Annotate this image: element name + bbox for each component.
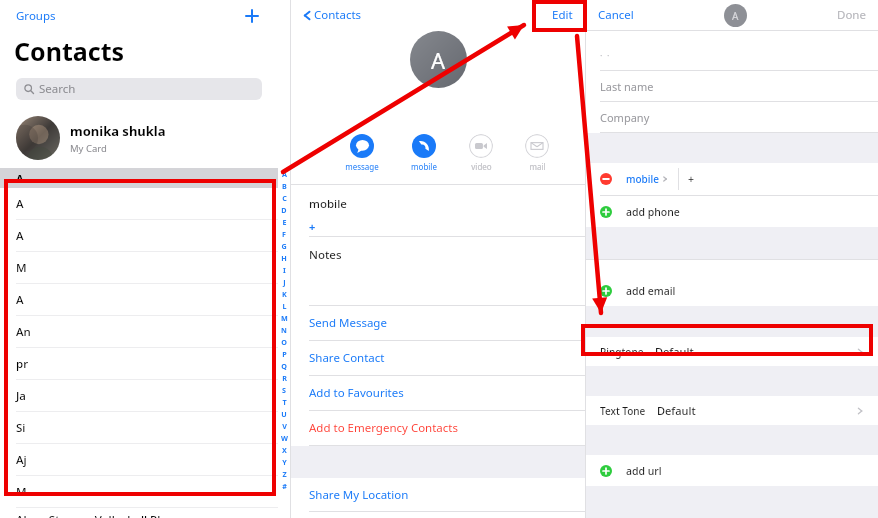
staticText: H: [281, 253, 287, 263]
button[interactable]: Y: [278, 456, 290, 468]
button[interactable]: mobile: [586, 163, 878, 195]
button[interactable]: Send Message: [291, 306, 585, 340]
staticText: Default: [655, 344, 694, 359]
staticText: My Card: [70, 142, 107, 155]
button[interactable]: X: [278, 444, 290, 456]
staticText: Contacts: [314, 7, 362, 23]
button[interactable]: Company: [586, 102, 878, 133]
button[interactable]: Done: [835, 3, 868, 27]
staticText: A: [431, 45, 446, 75]
staticText: R: [282, 373, 287, 383]
staticText: Edit: [552, 7, 573, 23]
button[interactable]: Add to Emergency Contacts: [291, 411, 585, 445]
button[interactable]: O: [278, 336, 290, 348]
staticText: G: [281, 241, 287, 251]
button[interactable]: K: [278, 288, 290, 300]
button[interactable]: G: [278, 240, 290, 252]
staticText: Aj: [16, 452, 27, 468]
staticText: Z: [282, 469, 287, 479]
button[interactable]: Z: [278, 468, 290, 480]
button[interactable]: Share Contact: [291, 341, 585, 375]
button[interactable]: W: [278, 432, 290, 444]
button[interactable]: Add to Favourites: [291, 376, 585, 410]
button[interactable]: V: [278, 420, 290, 432]
button[interactable]: H: [278, 252, 290, 264]
button[interactable]: Cancel: [596, 3, 636, 27]
button[interactable]: An: [0, 316, 278, 348]
button[interactable]: N: [278, 324, 290, 336]
button[interactable]: F: [278, 228, 290, 240]
button[interactable]: A: [0, 220, 278, 252]
button[interactable]: Aj: [0, 444, 278, 476]
staticText: A: [16, 196, 24, 212]
staticText: Si: [16, 420, 26, 436]
staticText: Notes: [309, 247, 342, 263]
button[interactable]: D: [278, 204, 290, 216]
button[interactable]: mobile: [409, 132, 439, 174]
button[interactable]: video: [467, 132, 495, 174]
staticText: Ringtone: [600, 345, 644, 359]
staticText: M: [281, 313, 288, 323]
button[interactable]: Contacts: [299, 3, 366, 27]
button[interactable]: P: [278, 348, 290, 360]
staticText: Done: [837, 7, 866, 23]
staticText: O: [281, 337, 287, 347]
button[interactable]: Groups: [14, 5, 58, 27]
staticText: V: [282, 421, 287, 431]
button[interactable]: J: [278, 276, 290, 288]
button[interactable]: S: [278, 384, 290, 396]
button[interactable]: A: [0, 188, 278, 220]
button[interactable]: R: [278, 372, 290, 384]
button[interactable]: I: [278, 264, 290, 276]
button[interactable]: Ja: [0, 380, 278, 412]
button[interactable]: Ringtone: [586, 337, 878, 366]
staticText: Q: [281, 361, 287, 371]
button[interactable]: C: [278, 192, 290, 204]
button[interactable]: Edit: [542, 2, 583, 28]
button[interactable]: M: [0, 252, 278, 284]
staticText: Ja: [16, 388, 26, 404]
button[interactable]: Add contact: [240, 4, 264, 28]
button[interactable]: Share My Location: [291, 478, 585, 511]
button[interactable]: message: [343, 132, 381, 174]
button[interactable]: mail: [523, 132, 551, 174]
button[interactable]: mobile: [291, 185, 585, 236]
button[interactable]: #: [278, 480, 290, 492]
button[interactable]: T: [278, 396, 290, 408]
staticText: D: [281, 205, 287, 215]
button[interactable]: pr: [0, 348, 278, 380]
button[interactable]: add url: [586, 455, 878, 486]
button[interactable]: E: [278, 216, 290, 228]
button[interactable]: B: [278, 180, 290, 192]
button[interactable]: Search: [16, 78, 262, 100]
staticText: F: [282, 229, 286, 239]
button[interactable]: Si: [0, 412, 278, 444]
staticText: M: [16, 260, 27, 276]
button[interactable]: · ·: [586, 40, 878, 71]
button[interactable]: add phone: [586, 196, 878, 227]
button[interactable]: A: [0, 284, 278, 316]
button[interactable]: M: [278, 312, 290, 324]
staticText: A: [732, 9, 739, 23]
button[interactable]: Text Tone: [586, 396, 878, 425]
button[interactable]: add email: [586, 275, 878, 306]
staticText: mail: [529, 161, 546, 172]
button[interactable]: L: [278, 300, 290, 312]
staticText: A: [16, 292, 24, 308]
staticText: monika shukla: [70, 122, 166, 140]
button[interactable]: A: [278, 168, 290, 180]
button[interactable]: Contact photo: [724, 4, 747, 27]
staticText: Company: [600, 110, 650, 125]
staticText: video: [471, 161, 492, 172]
button[interactable]: Q: [278, 360, 290, 372]
staticText: add url: [626, 464, 662, 478]
staticText: An: [16, 324, 31, 340]
staticText: A: [16, 228, 24, 244]
button[interactable]: M: [0, 476, 278, 508]
button[interactable]: Notes: [291, 237, 585, 305]
staticText: C: [282, 193, 287, 203]
button[interactable]: Last name: [586, 71, 878, 102]
staticText: add email: [626, 284, 676, 298]
button[interactable]: U: [278, 408, 290, 420]
button[interactable]: monika shukla: [0, 116, 278, 160]
